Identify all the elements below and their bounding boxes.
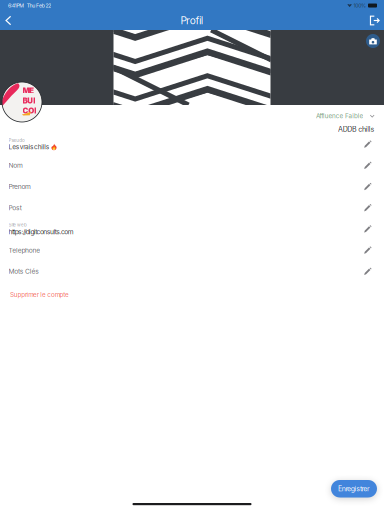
staticText: Mots Clés xyxy=(9,267,39,275)
staticText: Site web xyxy=(9,222,27,228)
button[interactable]: Mots Clés xyxy=(0,261,384,282)
staticText: 6:41PM Thu Feb 22 xyxy=(8,2,51,9)
button[interactable]: Telephone xyxy=(0,240,384,261)
staticText: ME xyxy=(22,86,34,95)
staticText: 100% xyxy=(353,2,366,9)
staticText: Nom xyxy=(9,161,23,169)
staticText: Supprimer le compte xyxy=(10,291,69,299)
button[interactable]: Nom xyxy=(0,155,384,176)
staticText: Pseudo xyxy=(9,137,25,143)
staticText: Profil xyxy=(180,14,203,27)
staticText: Telephone xyxy=(9,246,40,254)
staticText: ADDB chills xyxy=(338,125,374,133)
staticText: BUI xyxy=(22,96,35,105)
button[interactable]: Site web xyxy=(0,218,384,240)
button[interactable]: Affluence Faible xyxy=(316,112,374,120)
button[interactable]: Supprimer le compte xyxy=(0,288,79,302)
button[interactable]: Log out xyxy=(366,11,384,30)
button[interactable]: Change cover photo xyxy=(364,32,382,50)
button[interactable]: Pseudo xyxy=(0,134,384,155)
staticText: Affluence Faible xyxy=(316,112,363,120)
staticText: https://digitconsults.com xyxy=(9,228,74,236)
staticText: Prenom xyxy=(9,183,31,191)
button[interactable]: Prenom xyxy=(0,176,384,197)
button[interactable]: Post xyxy=(0,197,384,218)
staticText: Les vrais chills xyxy=(9,143,49,151)
button[interactable]: Enregistrer xyxy=(331,480,377,497)
staticText: Post xyxy=(9,204,22,212)
staticText: COI xyxy=(22,106,36,115)
button[interactable]: Back xyxy=(0,11,17,30)
staticText: Enregistrer xyxy=(338,485,370,493)
